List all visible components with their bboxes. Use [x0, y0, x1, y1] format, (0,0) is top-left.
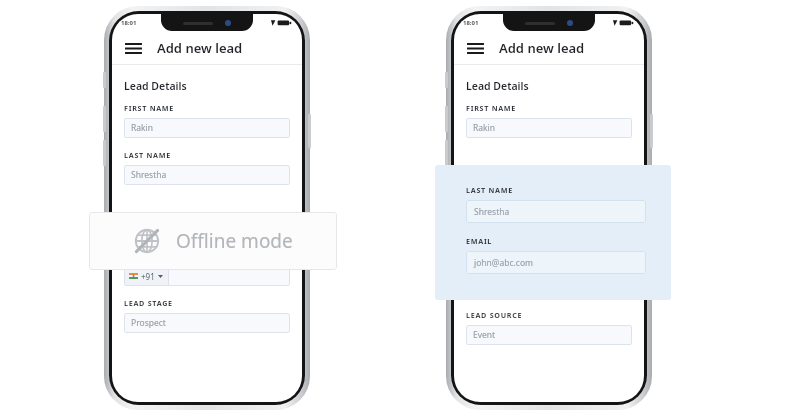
- staticText: Add new lead: [157, 39, 243, 57]
- staticText: LAST NAME: [124, 150, 171, 160]
- staticText: Prospect: [131, 317, 166, 329]
- staticText: EMAIL: [466, 236, 493, 246]
- button[interactable]: Rakin: [466, 118, 632, 138]
- staticText: john@abc.com: [474, 257, 534, 269]
- button[interactable]: Open navigation menu: [123, 38, 143, 58]
- button[interactable]: Rakin: [124, 118, 290, 138]
- button[interactable]: Prospect: [124, 313, 290, 333]
- staticText: Lead Details: [124, 79, 187, 93]
- staticText: +91: [141, 271, 155, 282]
- button[interactable]: Shrestha: [124, 165, 290, 185]
- staticText: Rakin: [131, 122, 154, 134]
- staticText: Shrestha: [474, 206, 510, 218]
- staticText: FIRST NAME: [124, 103, 175, 113]
- staticText: 18:01: [121, 19, 137, 27]
- staticText: Shrestha: [131, 169, 167, 181]
- staticText: Event: [473, 329, 496, 341]
- staticText: LEAD SOURCE: [466, 310, 523, 320]
- staticText: Add new lead: [499, 39, 585, 57]
- button[interactable]: Open navigation menu: [465, 38, 485, 58]
- staticText: Offline mode: [176, 228, 293, 254]
- staticText: 18:01: [463, 19, 479, 27]
- button[interactable]: +91: [124, 266, 290, 286]
- button[interactable]: Event: [466, 325, 632, 345]
- button[interactable]: Offline mode: [89, 212, 337, 270]
- staticText: PHONE NUMBER: [124, 251, 192, 261]
- other: Offline mode: [134, 228, 160, 254]
- button[interactable]: LAST NAME: [435, 165, 671, 300]
- staticText: LEAD STAGE: [124, 298, 173, 308]
- staticText: LAST NAME: [466, 185, 513, 195]
- staticText: Rakin: [473, 122, 496, 134]
- button[interactable]: Shrestha: [466, 200, 646, 223]
- staticText: Lead Details: [466, 79, 529, 93]
- staticText: FIRST NAME: [466, 103, 517, 113]
- button[interactable]: john@abc.com: [466, 251, 646, 274]
